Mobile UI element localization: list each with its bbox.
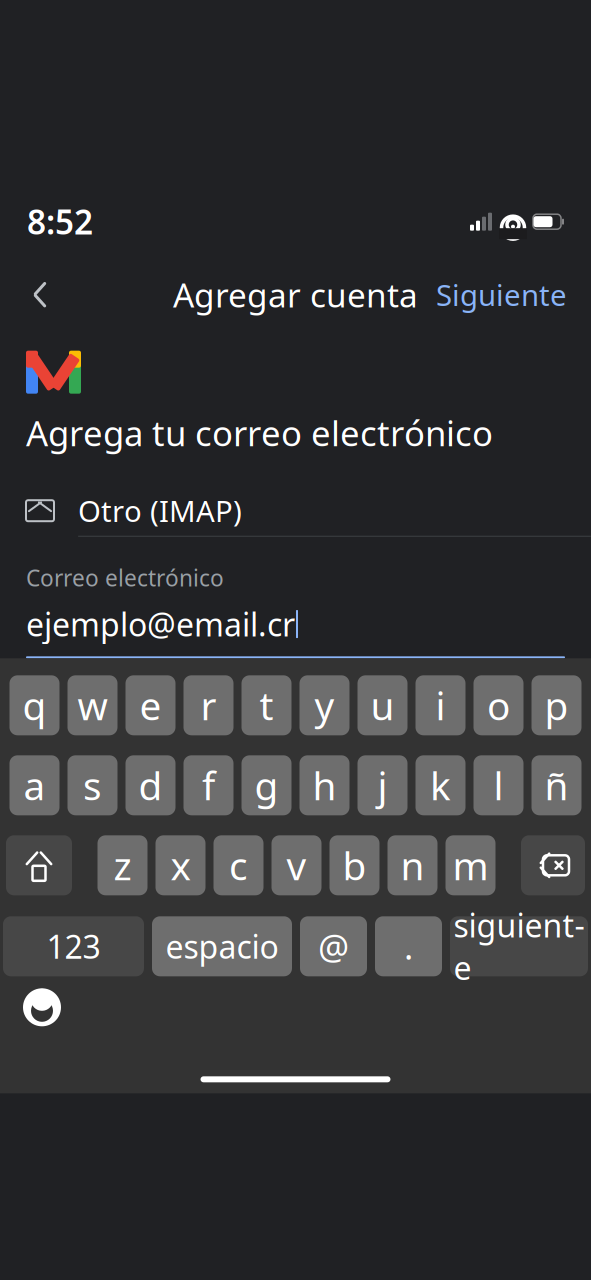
staticText: s: [83, 760, 102, 811]
button[interactable]: r: [183, 675, 233, 735]
button[interactable]: e: [125, 675, 175, 735]
button[interactable]: f: [183, 755, 233, 815]
button[interactable]: w: [67, 675, 117, 735]
button[interactable]: espacio: [152, 916, 292, 976]
button[interactable]: h: [299, 755, 349, 815]
staticText: p: [544, 680, 568, 731]
staticText: ñ: [544, 760, 568, 811]
button[interactable]: j: [357, 755, 407, 815]
staticText: espacio: [165, 925, 278, 968]
button[interactable]: Emoji: [16, 981, 68, 1033]
staticText: c: [229, 840, 248, 891]
staticText: l: [493, 760, 503, 811]
button[interactable]: .: [375, 916, 442, 976]
staticText: t: [259, 680, 273, 731]
staticText: @: [318, 923, 349, 969]
staticText: Siguiente: [436, 275, 567, 314]
button[interactable]: c: [213, 835, 263, 895]
button[interactable]: z: [97, 835, 147, 895]
staticText: z: [113, 840, 131, 891]
staticText: .: [404, 923, 413, 969]
staticText: f: [202, 760, 215, 811]
staticText: 8:52: [27, 200, 93, 244]
button[interactable]: ñ: [531, 755, 581, 815]
button[interactable]: m: [445, 835, 495, 895]
staticText: v: [286, 840, 306, 891]
button[interactable]: d: [125, 755, 175, 815]
button[interactable]: s: [67, 755, 117, 815]
button[interactable]: b: [329, 835, 379, 895]
button[interactable]: x: [155, 835, 205, 895]
staticText: m: [452, 840, 488, 891]
button[interactable]: i: [415, 675, 465, 735]
staticText: 123: [46, 925, 100, 968]
button[interactable]: Otro (IMAP): [0, 486, 591, 537]
staticText: ejemplo@email.cr: [26, 603, 295, 645]
staticText: d: [138, 760, 162, 811]
button[interactable]: y: [299, 675, 349, 735]
staticText: a: [23, 760, 45, 811]
button[interactable]: Siguiente: [430, 273, 573, 317]
button[interactable]: t: [241, 675, 291, 735]
staticText: x: [170, 840, 190, 891]
button[interactable]: l: [473, 755, 523, 815]
staticText: k: [430, 760, 451, 811]
staticText: q: [22, 680, 46, 731]
staticText: j: [377, 760, 387, 811]
button[interactable]: 123: [3, 916, 144, 976]
staticText: siguiente: [453, 904, 584, 989]
staticText: o: [487, 680, 510, 731]
button[interactable]: u: [357, 675, 407, 735]
button[interactable]: p: [531, 675, 581, 735]
button[interactable]: q: [9, 675, 59, 735]
staticText: h: [312, 760, 336, 811]
button[interactable]: v: [271, 835, 321, 895]
button[interactable]: Atrás: [18, 273, 62, 317]
staticText: g: [254, 760, 278, 811]
staticText: y: [314, 680, 334, 731]
staticText: Agrega tu correo electrónico: [26, 410, 493, 456]
button[interactable]: @: [300, 916, 367, 976]
staticText: Otro (IMAP): [78, 491, 242, 530]
staticText: w: [77, 680, 107, 731]
button[interactable]: Mayúsculas: [6, 835, 72, 895]
button[interactable]: k: [415, 755, 465, 815]
staticText: Correo electrónico: [26, 563, 224, 593]
staticText: r: [200, 680, 216, 731]
button[interactable]: o: [473, 675, 523, 735]
button[interactable]: Borrar: [521, 835, 585, 895]
staticText: Agregar cuenta: [173, 273, 418, 317]
staticText: b: [342, 840, 366, 891]
button[interactable]: g: [241, 755, 291, 815]
staticText: e: [139, 680, 161, 731]
staticText: n: [400, 840, 424, 891]
button[interactable]: a: [9, 755, 59, 815]
staticText: i: [435, 680, 445, 731]
button[interactable]: siguiente: [450, 916, 588, 976]
button[interactable]: n: [387, 835, 437, 895]
staticText: u: [370, 680, 394, 731]
